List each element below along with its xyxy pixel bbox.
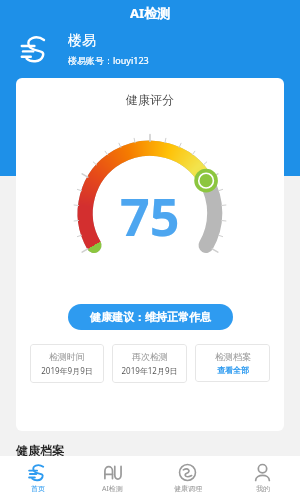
staticText: AI检测: [130, 4, 171, 22]
staticText: 检测时间: [49, 351, 85, 362]
staticText: 健康建议：维持正常作息: [90, 310, 211, 324]
staticText: 2019年9月9日: [41, 365, 93, 376]
button[interactable]: 检测时间: [30, 344, 104, 383]
staticText: AI检测: [102, 484, 123, 494]
button[interactable]: 检测档案: [195, 344, 270, 382]
staticText: 楼易: [68, 32, 96, 50]
staticText: 我的: [256, 484, 270, 493]
staticText: 检测档案: [215, 351, 251, 362]
button[interactable]: 健康建议：维持正常作息: [68, 304, 233, 330]
staticText: 首页: [31, 484, 45, 493]
staticText: 健康调理: [174, 484, 202, 493]
staticText: 75: [120, 180, 180, 251]
button[interactable]: AI检测: [75, 456, 150, 500]
button[interactable]: 我的: [225, 456, 300, 500]
staticText: 再次检测: [132, 351, 168, 362]
staticText: 健康档案: [16, 443, 64, 458]
button[interactable]: 首页: [0, 456, 75, 500]
button[interactable]: 再次检测: [112, 344, 187, 383]
staticText: 查看全部: [217, 365, 249, 375]
button[interactable]: 健康调理: [150, 456, 225, 500]
staticText: 健康评分: [126, 92, 174, 107]
staticText: 2019年12月9日: [121, 365, 178, 376]
staticText: 楼易账号：louyi123: [68, 54, 149, 66]
